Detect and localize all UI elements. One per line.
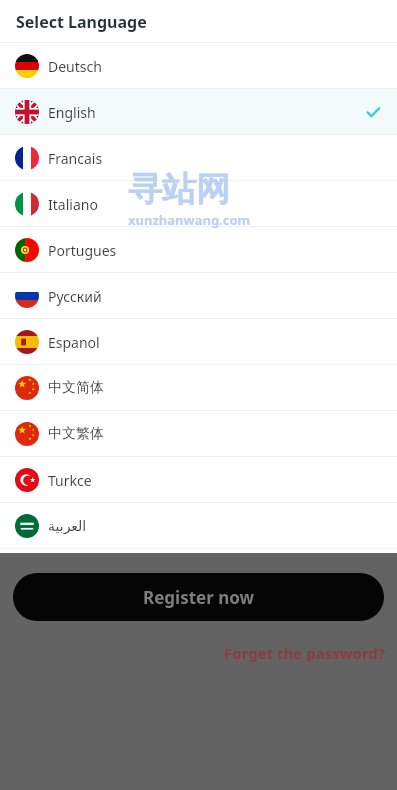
- staticText: Select Language: [16, 11, 147, 33]
- staticText: 寻站网: [128, 168, 230, 211]
- staticText: xunzhanwang.com: [128, 211, 251, 229]
- button[interactable]: Русский: [0, 273, 397, 319]
- button[interactable]: 中文繁体: [0, 411, 397, 457]
- button[interactable]: Italiano: [0, 181, 397, 227]
- button[interactable]: Portugues: [0, 227, 397, 273]
- staticText: Register now: [143, 586, 255, 609]
- staticText: English: [48, 103, 96, 122]
- staticText: Turkce: [48, 471, 92, 490]
- staticText: Espanol: [48, 333, 100, 352]
- staticText: 中文简体: [48, 379, 104, 397]
- staticText: العربية: [48, 518, 87, 534]
- staticText: Portugues: [48, 241, 117, 260]
- button[interactable]: Espanol: [0, 319, 397, 365]
- staticText: 中文繁体: [48, 425, 104, 443]
- staticText: Italiano: [48, 195, 98, 214]
- staticText: Francais: [48, 149, 103, 168]
- button[interactable]: Register now: [13, 573, 384, 621]
- button[interactable]: 中文简体: [0, 365, 397, 411]
- button[interactable]: English: [0, 89, 397, 135]
- button[interactable]: Francais: [0, 135, 397, 181]
- staticText: Forget the password?: [224, 643, 385, 663]
- button[interactable]: Turkce: [0, 457, 397, 503]
- button[interactable]: العربية: [0, 503, 397, 549]
- staticText: Русский: [48, 287, 102, 306]
- button[interactable]: Deutsch: [0, 43, 397, 89]
- staticText: Deutsch: [48, 57, 102, 76]
- button[interactable]: Forget the password?: [224, 643, 385, 663]
